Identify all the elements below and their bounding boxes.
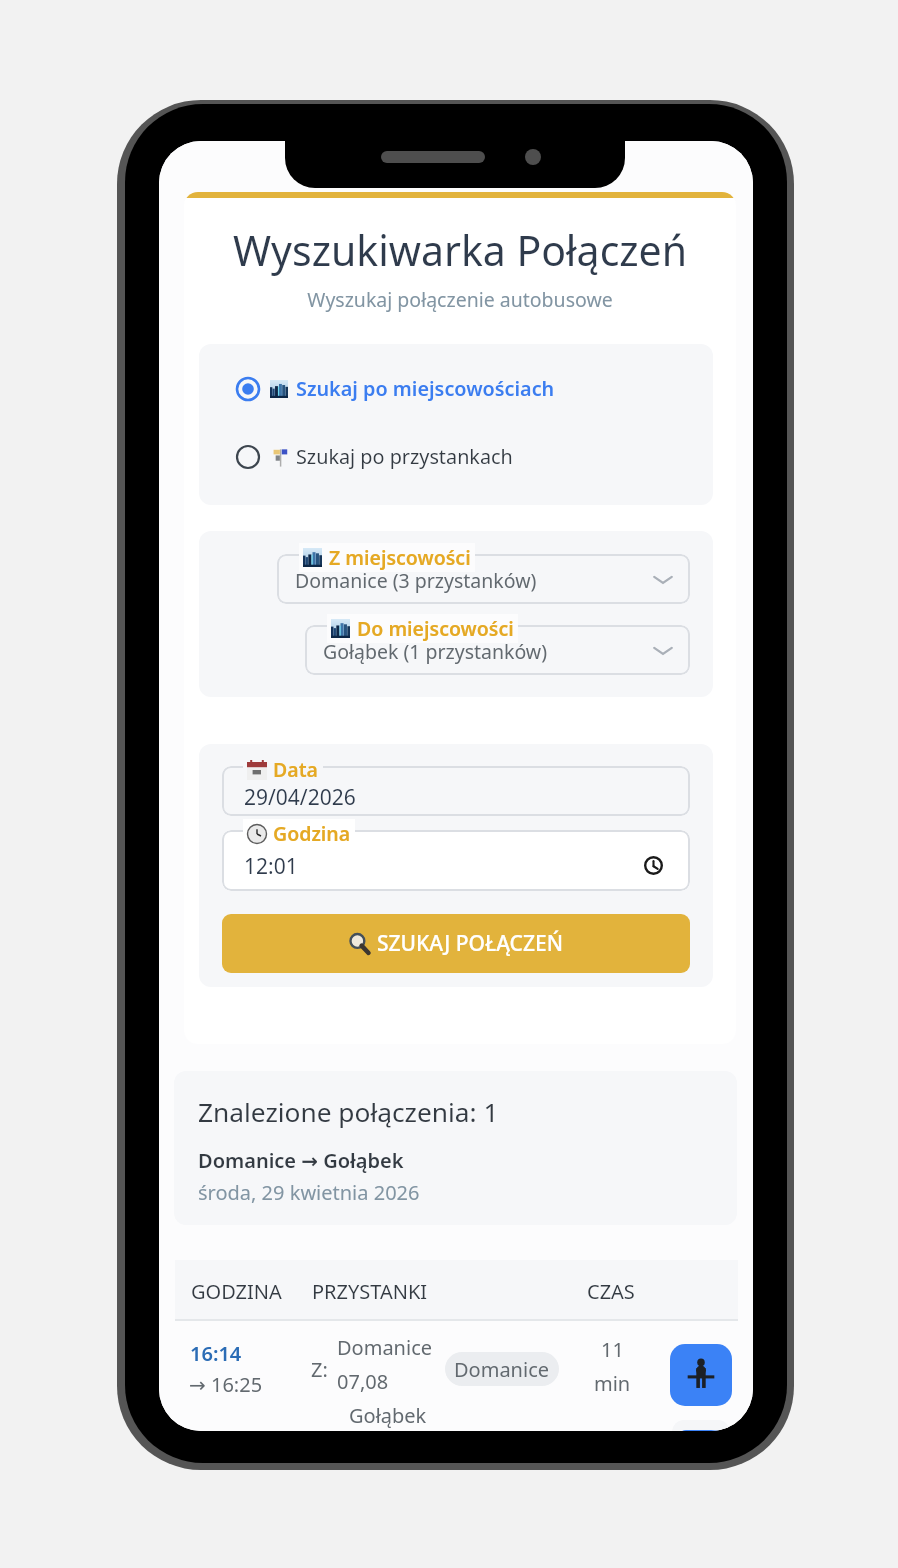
button[interactable]: 12:01 (222, 819, 690, 891)
button[interactable]: Accessibility options (670, 1344, 732, 1406)
staticText: Domanice (337, 1334, 433, 1361)
staticText: Godzina (273, 820, 351, 847)
button[interactable]: SZUKAJ POŁĄCZEŃ (222, 914, 690, 973)
staticText: PRZYSTANKI (312, 1278, 428, 1305)
staticText: Gołąbek (349, 1402, 427, 1429)
staticText: 12:01 (244, 852, 298, 881)
staticText: środa, 29 kwietnia 2026 (198, 1179, 420, 1206)
staticText: 07,08 (337, 1368, 389, 1395)
staticText: Znalezione połączenia: 1 (198, 1094, 499, 1130)
staticText: 11 (601, 1336, 624, 1363)
staticText: → 16:25 (189, 1371, 263, 1398)
button[interactable]: Szukaj po przystankach (199, 433, 713, 481)
staticText: Gołąbek (1 przystanków) (323, 638, 548, 665)
staticText: Domanice → Gołąbek (198, 1147, 404, 1174)
button[interactable]: Szukaj po miejscowościach (199, 365, 713, 413)
staticText: Z: (311, 1356, 328, 1383)
staticText: GODZINA (191, 1278, 282, 1305)
button[interactable]: More options (672, 1420, 730, 1431)
staticText: Data (273, 756, 319, 783)
staticText: 29/04/2026 (244, 783, 356, 812)
staticText: Wyszukaj połączenie autobusowe (184, 286, 736, 313)
staticText: Szukaj po przystankach (296, 443, 513, 470)
staticText: CZAS (587, 1278, 635, 1305)
button[interactable]: Gołąbek (1 przystanków) (305, 614, 690, 675)
staticText: Z miejscowości (329, 544, 471, 571)
staticText: SZUKAJ POŁĄCZEŃ (377, 929, 563, 958)
staticText: Domanice (454, 1356, 550, 1383)
staticText: Domanice (3 przystanków) (295, 567, 537, 594)
button[interactable]: Domanice (3 przystanków) (277, 543, 690, 604)
button[interactable]: 29/04/2026 (222, 755, 690, 816)
staticText: Do miejscowości (357, 615, 514, 642)
staticText: min (594, 1370, 631, 1397)
staticText: Szukaj po miejscowościach (296, 375, 555, 402)
staticText: Wyszukiwarka Połączeń (184, 222, 736, 278)
staticText: 16:14 (190, 1340, 242, 1367)
